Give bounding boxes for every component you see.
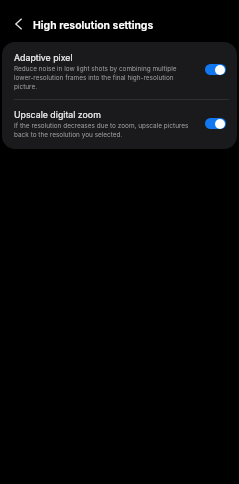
button[interactable]: Toggle — [205, 64, 226, 75]
staticText: Adaptive pixel — [14, 52, 73, 63]
staticText: Reduce noise in low light shots by combi… — [14, 65, 190, 91]
button[interactable]: Back — [4, 10, 32, 38]
button[interactable]: Adaptive pixel — [2, 42, 237, 99]
staticText: High resolution settings — [33, 19, 154, 32]
button[interactable]: Upscale digital zoom — [2, 100, 237, 149]
button[interactable]: Toggle — [205, 118, 226, 129]
staticText: Upscale digital zoom — [14, 109, 101, 120]
staticText: If the resolution decreases due to zoom,… — [14, 122, 190, 139]
